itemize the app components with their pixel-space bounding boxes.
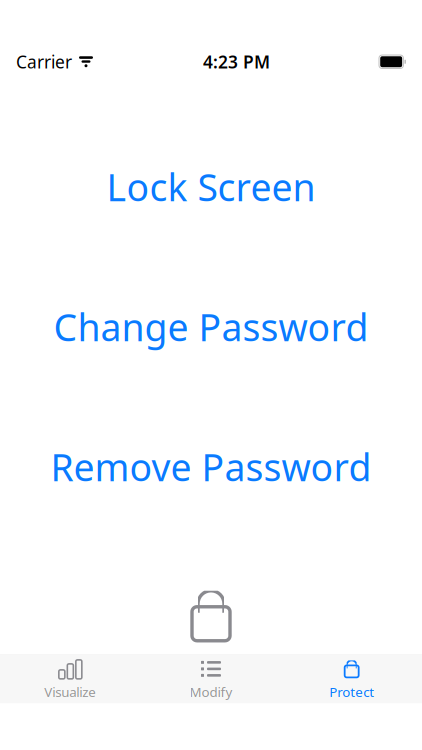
staticText: Lock Screen bbox=[106, 162, 315, 212]
staticText: Modify bbox=[189, 683, 232, 701]
staticText: Visualize bbox=[44, 683, 96, 701]
button[interactable]: Visualize bbox=[0, 655, 141, 703]
button[interactable]: Remove Password bbox=[0, 449, 422, 485]
button[interactable]: Modify bbox=[141, 655, 281, 703]
button[interactable]: Change Password bbox=[0, 309, 422, 345]
button[interactable]: Protect bbox=[281, 655, 422, 703]
staticText: Change Password bbox=[53, 302, 368, 352]
staticText: 4:23 PM bbox=[203, 50, 270, 73]
staticText: Remove Password bbox=[50, 442, 371, 492]
button[interactable]: Lock Screen bbox=[0, 169, 422, 205]
staticText: Carrier bbox=[16, 50, 72, 73]
staticText: Protect bbox=[329, 683, 374, 701]
